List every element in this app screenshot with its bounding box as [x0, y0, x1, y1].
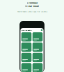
staticText: Reminders and logs for plants [17, 10, 47, 13]
staticText: in Your Pocket [25, 4, 39, 7]
button[interactable]: Plant card [21, 42, 31, 52]
staticText: Greenhouse [26, 1, 37, 4]
button[interactable]: Plant card [21, 53, 31, 62]
button[interactable]: Plant card [21, 32, 31, 41]
staticText: My Plants [21, 29, 31, 32]
button[interactable]: Plant card [21, 63, 31, 72]
button[interactable]: Plant card [32, 42, 43, 52]
button[interactable]: Plant card [32, 53, 43, 62]
button[interactable]: Plant card [32, 63, 43, 72]
button[interactable]: Plant card [32, 32, 43, 41]
